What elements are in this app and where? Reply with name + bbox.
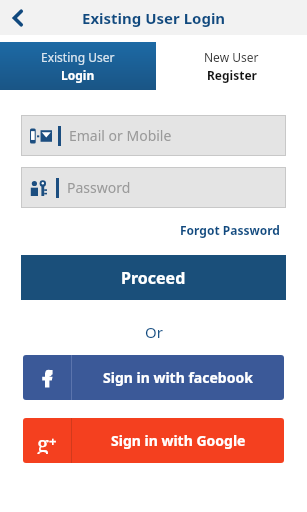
staticText: New User bbox=[204, 49, 259, 65]
button[interactable]: Forgot Password bbox=[176, 218, 284, 242]
button[interactable]: g bbox=[23, 418, 284, 463]
staticText: Existing User Login bbox=[82, 8, 226, 28]
staticText: Proceed bbox=[121, 267, 186, 289]
staticText: Register bbox=[207, 67, 257, 83]
button[interactable]: Sign in with facebook bbox=[23, 355, 284, 400]
staticText: Sign in with facebook bbox=[103, 368, 253, 387]
staticText: Sign in with Google bbox=[111, 431, 246, 450]
staticText: Email or Mobile bbox=[69, 126, 172, 145]
button[interactable]: Password bbox=[22, 168, 285, 207]
button[interactable]: Back bbox=[0, 0, 36, 35]
staticText: Password bbox=[67, 178, 131, 197]
button[interactable]: Proceed bbox=[21, 255, 286, 300]
staticText: Forgot Password bbox=[180, 222, 280, 238]
staticText: Login bbox=[61, 67, 95, 83]
button[interactable]: Email or Mobile bbox=[22, 116, 285, 155]
staticText: + bbox=[49, 432, 57, 450]
staticText: Existing User bbox=[41, 49, 115, 65]
button[interactable]: New User bbox=[156, 42, 307, 90]
staticText: g bbox=[37, 428, 49, 454]
button[interactable]: Existing User bbox=[0, 42, 156, 90]
staticText: Or bbox=[145, 322, 163, 342]
